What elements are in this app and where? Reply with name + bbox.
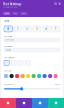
button[interactable]: Color — [26, 74, 30, 78]
staticText: Font Family — [4, 35, 12, 37]
button[interactable]: Undo — [54, 2, 57, 5]
button[interactable]: Style 5 — [42, 26, 50, 32]
staticText: Text Alignment — [4, 57, 15, 59]
staticText: Style — [5, 13, 9, 14]
button[interactable]: Color — [9, 74, 14, 78]
staticText: I — [17, 27, 18, 31]
button[interactable]: Color — [15, 74, 19, 78]
button[interactable]: SF Pro Text — [4, 38, 60, 42]
button[interactable]: Style 3 — [23, 26, 31, 32]
staticText: B — [7, 27, 9, 31]
button[interactable]: Style — [3, 12, 11, 15]
staticText: Regular — [6, 49, 12, 51]
button[interactable]: Color — [53, 74, 58, 78]
staticText: A — [45, 27, 47, 31]
staticText: S — [36, 27, 37, 31]
button[interactable]: Redo — [58, 2, 61, 5]
staticText: Text Settings — [3, 2, 21, 6]
staticText: Color — [22, 13, 26, 14]
button[interactable]: Color — [48, 74, 52, 78]
button[interactable]: Color — [37, 74, 41, 78]
staticText: SF Pro Text — [6, 39, 14, 41]
staticText: Text — [4, 19, 9, 22]
button[interactable]: Color — [4, 74, 8, 78]
staticText: Text Opacity — [4, 84, 14, 85]
staticText: Text Color — [4, 70, 12, 72]
button[interactable]: Style 1 — [4, 26, 12, 32]
staticText: Customize your style — [3, 6, 17, 8]
button[interactable]: Size — [12, 12, 19, 15]
button[interactable]: Share — [32, 98, 48, 108]
button[interactable]: Style — [16, 98, 32, 108]
button[interactable]: Style 4 — [33, 26, 41, 32]
staticText: Size — [14, 13, 17, 14]
button[interactable]: Color — [42, 74, 47, 78]
staticText: Font Weight — [4, 45, 13, 47]
button[interactable]: Color — [31, 74, 36, 78]
staticText: Reset — [55, 84, 60, 85]
staticText: U — [26, 27, 28, 31]
button[interactable]: Reset — [55, 84, 60, 85]
button[interactable]: Delete — [0, 98, 16, 108]
button[interactable]: Color — [20, 74, 25, 78]
button[interactable]: Style 6 — [52, 26, 60, 32]
staticText: T — [55, 27, 57, 31]
button[interactable]: Align 1 — [4, 60, 9, 65]
button[interactable]: Regular — [4, 48, 60, 52]
button[interactable]: Style 2 — [13, 26, 22, 32]
button[interactable]: Done — [48, 98, 64, 108]
button[interactable]: Color — [20, 12, 28, 15]
